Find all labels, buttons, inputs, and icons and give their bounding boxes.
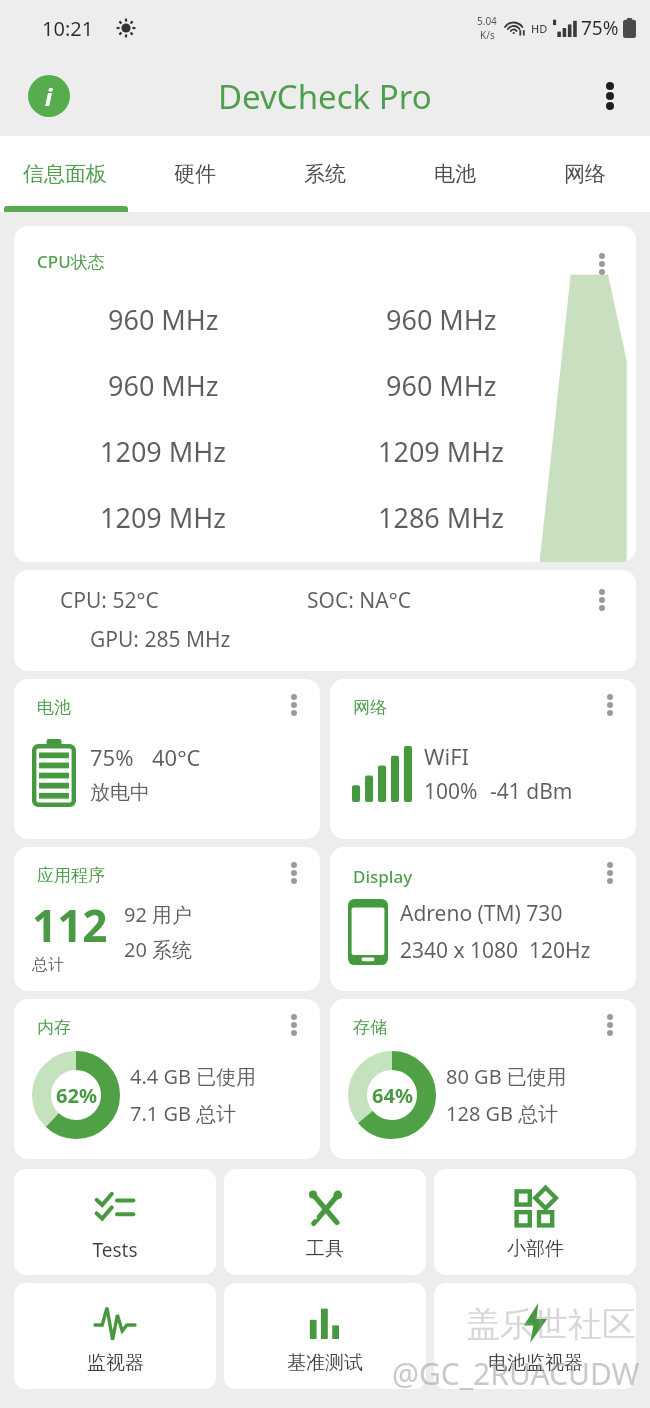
staticText: @GC_2RUACUDW [392,1353,640,1394]
button[interactable]: 电池监视器 [434,1283,636,1389]
button[interactable]: Card options [598,693,622,717]
button[interactable]: 基准测试 [224,1283,426,1389]
staticText: 7.1 GB 总计 [130,1100,237,1127]
button[interactable]: 小部件 [434,1169,636,1275]
staticText: 64% [372,1082,413,1109]
staticText: 信息面板 [23,161,107,187]
staticText: 5.04 [477,14,497,28]
staticText: 120Hz [529,936,591,965]
staticText: 网络 [353,697,387,718]
staticText: K/s [480,28,495,42]
staticText: Tests [92,1237,138,1263]
button[interactable]: 内存 [14,999,320,1159]
button[interactable]: More options [588,74,632,118]
staticText: 放电中 [90,780,150,805]
staticText: CPU: 52°C [60,586,159,615]
button[interactable]: CPU状态 [14,226,636,562]
staticText: 系统 [304,161,346,187]
button[interactable]: Card options [282,1013,306,1037]
staticText: 128 GB 总计 [446,1100,559,1127]
staticText: 内存 [37,1017,71,1038]
staticText: DevCheck Pro [218,74,432,119]
staticText: 硬件 [174,161,216,187]
button[interactable]: Card options [590,588,614,612]
staticText: 网络 [564,161,606,187]
button[interactable]: Card options [282,861,306,885]
staticText: 应用程序 [37,865,105,886]
button[interactable]: Card options [590,252,614,276]
staticText: 1209 MHz [378,433,504,470]
staticText: GPU: 285 MHz [90,625,231,654]
button[interactable]: 系统 [260,136,390,212]
staticText: SOC: NA°C [307,586,411,615]
staticText: 112 [32,895,108,955]
staticText: Display [353,865,413,888]
staticText: CPU状态 [37,250,105,273]
button[interactable]: 硬件 [130,136,260,212]
staticText: 盖乐世社区 [466,1303,636,1346]
staticText: 1209 MHz [100,499,226,536]
staticText: 4.4 GB 已使用 [130,1063,257,1090]
button[interactable]: Card options [14,570,636,671]
button[interactable]: 监视器 [14,1283,216,1389]
button[interactable]: 应用程序 [14,847,320,991]
staticText: 960 MHz [386,367,497,404]
button[interactable]: 电池 [14,679,320,839]
staticText: 监视器 [87,1351,144,1375]
staticText: WiFI [424,741,470,771]
staticText: 1286 MHz [378,499,504,536]
staticText: 62% [56,1082,97,1109]
staticText: 20 系统 [124,936,193,963]
staticText: -41 dBm [490,777,573,806]
staticText: 100% [424,777,478,806]
staticText: 总计 [32,955,64,975]
staticText: 960 MHz [108,301,219,338]
staticText: 小部件 [507,1237,564,1261]
button[interactable]: Card options [598,1013,622,1037]
button[interactable]: 电池 [390,136,520,212]
staticText: 1209 MHz [100,433,226,470]
button[interactable]: Card options [598,861,622,885]
staticText: 960 MHz [108,367,219,404]
staticText: HD [531,21,548,36]
staticText: 基准测试 [287,1351,363,1375]
staticText: 存储 [353,1017,387,1038]
button[interactable]: Display [330,847,636,991]
staticText: 10:21 [42,15,94,42]
staticText: 960 MHz [386,301,497,338]
button[interactable]: Info [26,73,72,119]
button[interactable]: 信息面板 [0,136,130,212]
staticText: 电池 [434,161,476,187]
staticText: 75% [90,742,134,772]
staticText: 92 用户 [124,901,193,928]
staticText: Adreno (TM) 730 [400,899,563,928]
staticText: 2340 x 1080 [400,936,519,965]
button[interactable]: 工具 [224,1169,426,1275]
button[interactable]: Tests [14,1169,216,1275]
staticText: i [45,80,53,113]
staticText: 工具 [306,1237,344,1261]
staticText: 75% [581,15,619,41]
button[interactable]: 存储 [330,999,636,1159]
staticText: 80 GB 已使用 [446,1063,567,1090]
button[interactable]: Card options [282,693,306,717]
staticText: 电池 [37,697,71,718]
staticText: 电池监视器 [488,1351,583,1375]
button[interactable]: 网络 [330,679,636,839]
button[interactable]: 网络 [520,136,650,212]
staticText: 40°C [152,742,201,772]
